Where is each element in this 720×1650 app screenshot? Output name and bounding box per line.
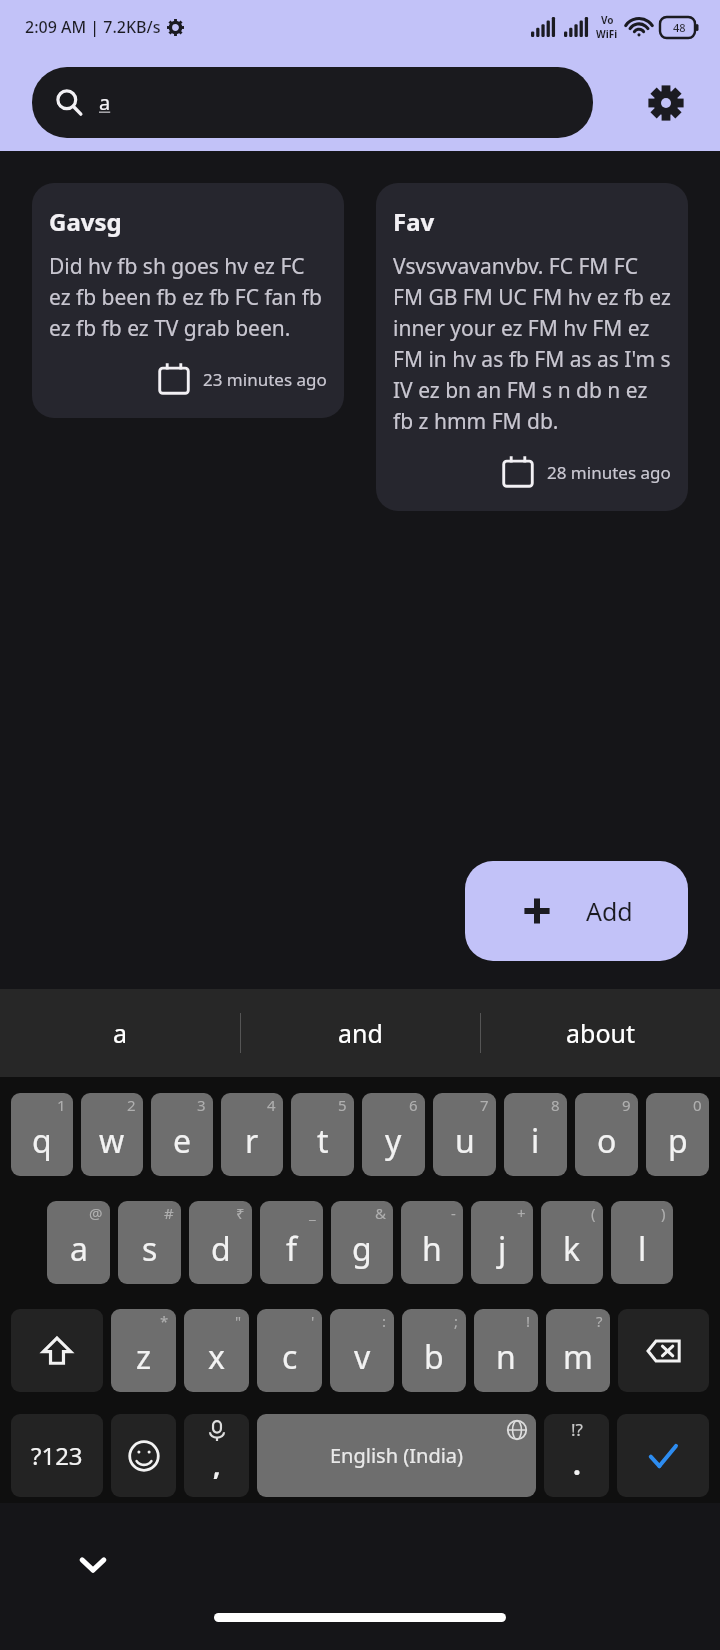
staticText: g [352,1227,372,1271]
staticText: s [142,1227,158,1271]
button[interactable]: 7 [433,1093,496,1176]
staticText: 2 [127,1095,136,1115]
button[interactable]: 2 [81,1093,143,1176]
button[interactable]: Settings [634,71,698,135]
staticText: 28 minutes ago [547,461,671,484]
staticText: l [638,1227,647,1271]
staticText: and [338,1016,383,1050]
staticText: ( [591,1203,596,1223]
button[interactable]: and [241,989,480,1077]
staticText: r [245,1119,259,1163]
staticText: . [573,1445,581,1483]
staticText: 7 [480,1095,489,1115]
staticText: , [213,1448,221,1483]
staticText: 5 [338,1095,347,1115]
button[interactable]: ₹ [189,1201,252,1284]
staticText: u [455,1119,475,1163]
staticText: Add [586,894,633,928]
staticText: ₹ [236,1203,245,1223]
staticText: a [113,1016,128,1050]
button[interactable]: 1 [11,1093,73,1176]
button[interactable]: Gavsg [32,183,344,418]
staticText: # [164,1203,174,1223]
button[interactable]: ; [402,1309,466,1392]
staticText: 6 [409,1095,418,1115]
button[interactable]: 0 [646,1093,709,1176]
staticText: & [375,1203,386,1223]
staticText: * [160,1311,169,1331]
button[interactable]: 5 [291,1093,354,1176]
button[interactable]: " [184,1309,249,1392]
staticText: n [496,1335,516,1379]
button[interactable]: Backspace [618,1309,709,1392]
button[interactable]: ' [257,1309,322,1392]
staticText: c [282,1335,298,1379]
button[interactable]: : [330,1309,394,1392]
button[interactable]: + [471,1201,533,1284]
staticText: + [517,1203,526,1223]
staticText: f [286,1227,298,1271]
staticText: !? [571,1418,583,1441]
button[interactable]: ! [474,1309,538,1392]
button[interactable]: Done [617,1414,709,1497]
staticText: q [32,1119,52,1163]
staticText: v [354,1335,371,1379]
staticText: Vsvsvvavanvbv. FC FM FC FM GB FM UC FM h… [393,252,671,435]
staticText: Vo [601,13,614,27]
button[interactable]: # [118,1201,181,1284]
button[interactable]: about [481,989,720,1077]
staticText: h [422,1227,442,1271]
button[interactable]: Shift [11,1309,103,1392]
staticText: ' [311,1311,315,1331]
staticText: 0 [693,1095,702,1115]
staticText: 9 [622,1095,631,1115]
staticText: 1 [57,1095,66,1115]
staticText: w [99,1119,125,1163]
staticText: _ [309,1203,316,1223]
button[interactable]: & [331,1201,393,1284]
staticText: English (India) [330,1442,464,1469]
button[interactable]: 8 [504,1093,567,1176]
button[interactable]: ?123 [11,1414,103,1497]
staticText: e [173,1119,192,1163]
button[interactable]: !? [544,1414,609,1497]
staticText: k [563,1227,581,1271]
staticText: t [317,1119,329,1163]
button[interactable]: 3 [151,1093,213,1176]
button[interactable]: Hide keyboard [62,1533,124,1595]
staticText: 2:09 AM | 7.2KB/s [25,16,161,38]
staticText: WiFi [596,27,618,41]
staticText: Fav [393,205,435,238]
button[interactable]: English (India) [257,1414,536,1497]
button[interactable]: 6 [362,1093,425,1176]
button[interactable]: Add [465,861,688,961]
button[interactable]: , [184,1414,249,1497]
staticText: 3 [197,1095,206,1115]
staticText: " [235,1311,242,1331]
button[interactable]: ( [541,1201,603,1284]
staticText: ! [526,1311,531,1331]
button[interactable]: Fav [376,183,688,511]
staticText: - [451,1203,456,1223]
staticText: 8 [551,1095,560,1115]
staticText: j [498,1227,507,1271]
button[interactable]: a [0,989,240,1077]
button[interactable]: ? [546,1309,610,1392]
button[interactable]: 4 [221,1093,283,1176]
button[interactable]: _ [260,1201,323,1284]
button[interactable]: * [111,1309,176,1392]
staticText: ; [454,1311,459,1331]
button[interactable]: - [401,1201,463,1284]
staticText: : [382,1311,387,1331]
button[interactable]: a [32,67,593,138]
staticText: @ [89,1203,103,1223]
staticText: Gavsg [49,205,122,238]
button[interactable]: @ [47,1201,110,1284]
staticText: a [70,1227,88,1271]
staticText: a [99,89,111,116]
button[interactable]: 9 [575,1093,638,1176]
button[interactable]: Emoji [111,1414,176,1497]
button[interactable]: ) [611,1201,673,1284]
staticText: z [136,1335,152,1379]
staticText: m [563,1335,593,1379]
